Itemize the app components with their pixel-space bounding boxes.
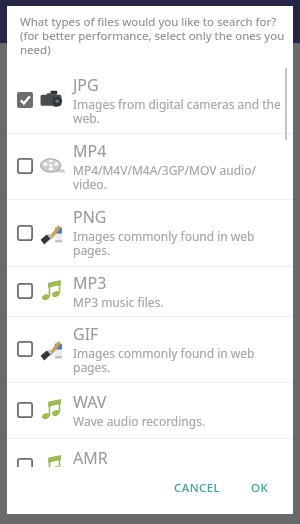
button[interactable]: PNG [7, 199, 293, 266]
staticText: JPG [73, 74, 99, 96]
staticText: MP4/M4V/M4A/3GP/MOV audio/video. [73, 162, 285, 193]
button[interactable]: WAV [7, 382, 293, 438]
staticText: MP3 [73, 272, 107, 294]
staticText: OK [251, 480, 269, 496]
button[interactable]: MP3 [7, 266, 293, 316]
button[interactable]: OK [243, 472, 277, 504]
button[interactable]: CANCEL [166, 472, 229, 504]
staticText: AMR [73, 447, 108, 467]
staticText: GIF [73, 323, 99, 345]
staticText: CANCEL [174, 480, 221, 496]
staticText: WAV [73, 391, 107, 413]
button[interactable]: GIF [7, 316, 293, 382]
staticText: Images commonly found in web pages. [73, 228, 285, 259]
staticText: MP4 [73, 140, 107, 162]
staticText: Wave audio recordings. [73, 413, 206, 429]
staticText: Images from digital cameras and the web. [73, 96, 285, 127]
staticText: MP3 music files. [73, 294, 164, 310]
staticText: Images commonly found in web pages. [73, 345, 285, 376]
staticText: PNG [73, 206, 107, 228]
staticText: What types of files would you like to se… [20, 14, 290, 57]
button[interactable]: AMR [7, 438, 293, 467]
button[interactable]: JPG [7, 67, 293, 133]
button[interactable]: MP4 [7, 133, 293, 199]
